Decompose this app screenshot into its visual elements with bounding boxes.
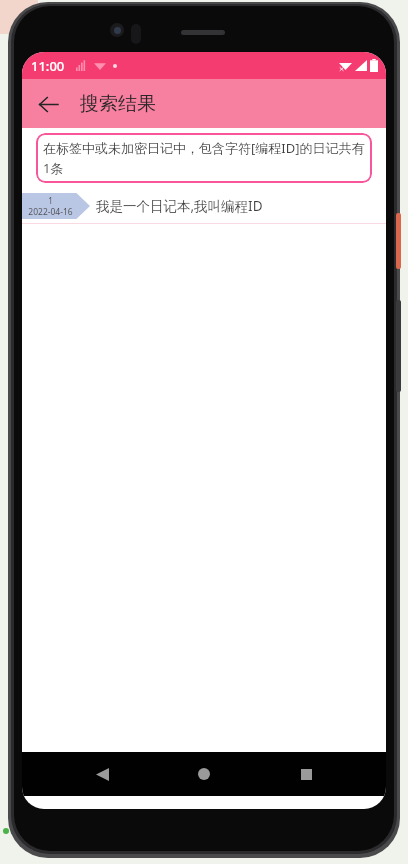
staticText: 我是一个日记本,我叫编程ID — [96, 197, 263, 215]
staticText: 11:00 — [31, 57, 65, 75]
staticText: 搜索结果 — [80, 92, 156, 116]
staticText: 1 — [48, 195, 53, 206]
button[interactable]: Back — [80, 752, 124, 796]
button[interactable]: 1 — [22, 189, 386, 223]
button[interactable]: Home — [182, 752, 226, 796]
button[interactable]: Back — [28, 84, 68, 124]
staticText: 4: — [12, 820, 22, 835]
button[interactable]: Recent apps — [284, 752, 328, 796]
button[interactable]: 在标签中或未加密日记中，包含字符[编程ID]的日记共有1条 — [36, 133, 372, 183]
staticText: 2022-04-16 — [28, 206, 73, 218]
staticText: 在标签中或未加密日记中，包含字符[编程ID]的日记共有1条 — [43, 139, 365, 177]
